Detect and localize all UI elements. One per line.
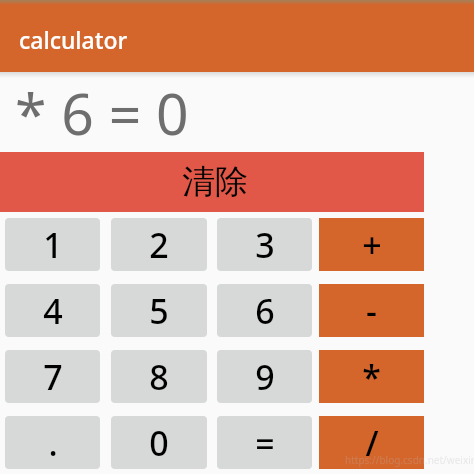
staticText: 5 [149,288,169,334]
button[interactable]: / [319,416,424,469]
staticText: 3 [255,222,275,268]
staticText: 2 [149,222,169,268]
staticText: / [365,420,379,466]
button[interactable]: 0 [111,416,207,469]
staticText: * 6 = 0 [15,74,189,148]
staticText: 6 [255,288,275,334]
button[interactable]: 6 [217,284,312,337]
button[interactable]: - [319,284,424,337]
staticText: + [362,222,382,268]
staticText: 9 [255,354,275,400]
button[interactable]: 8 [111,350,207,403]
button[interactable]: 3 [217,218,312,271]
staticText: . [48,420,58,466]
staticText: calculator [19,24,128,55]
staticText: 8 [149,354,169,400]
button[interactable]: 清除 [0,152,424,212]
button[interactable]: 1 [5,218,100,271]
staticText: 4 [43,288,63,334]
staticText: 0 [149,420,169,466]
button[interactable]: * [319,350,424,403]
button[interactable]: . [5,416,100,469]
staticText: https://blog.csdn.net/weixin_45451124 [345,453,474,467]
staticText: * [362,354,381,400]
button[interactable]: 5 [111,284,207,337]
staticText: = [255,420,275,466]
button[interactable]: = [217,416,312,469]
staticText: 7 [43,354,63,400]
button[interactable]: 2 [111,218,207,271]
staticText: - [366,288,377,334]
button[interactable]: 4 [5,284,100,337]
button[interactable]: 7 [5,350,100,403]
button[interactable]: + [319,218,424,271]
staticText: 清除 [182,161,248,203]
button[interactable]: 9 [217,350,312,403]
staticText: 1 [43,222,63,268]
